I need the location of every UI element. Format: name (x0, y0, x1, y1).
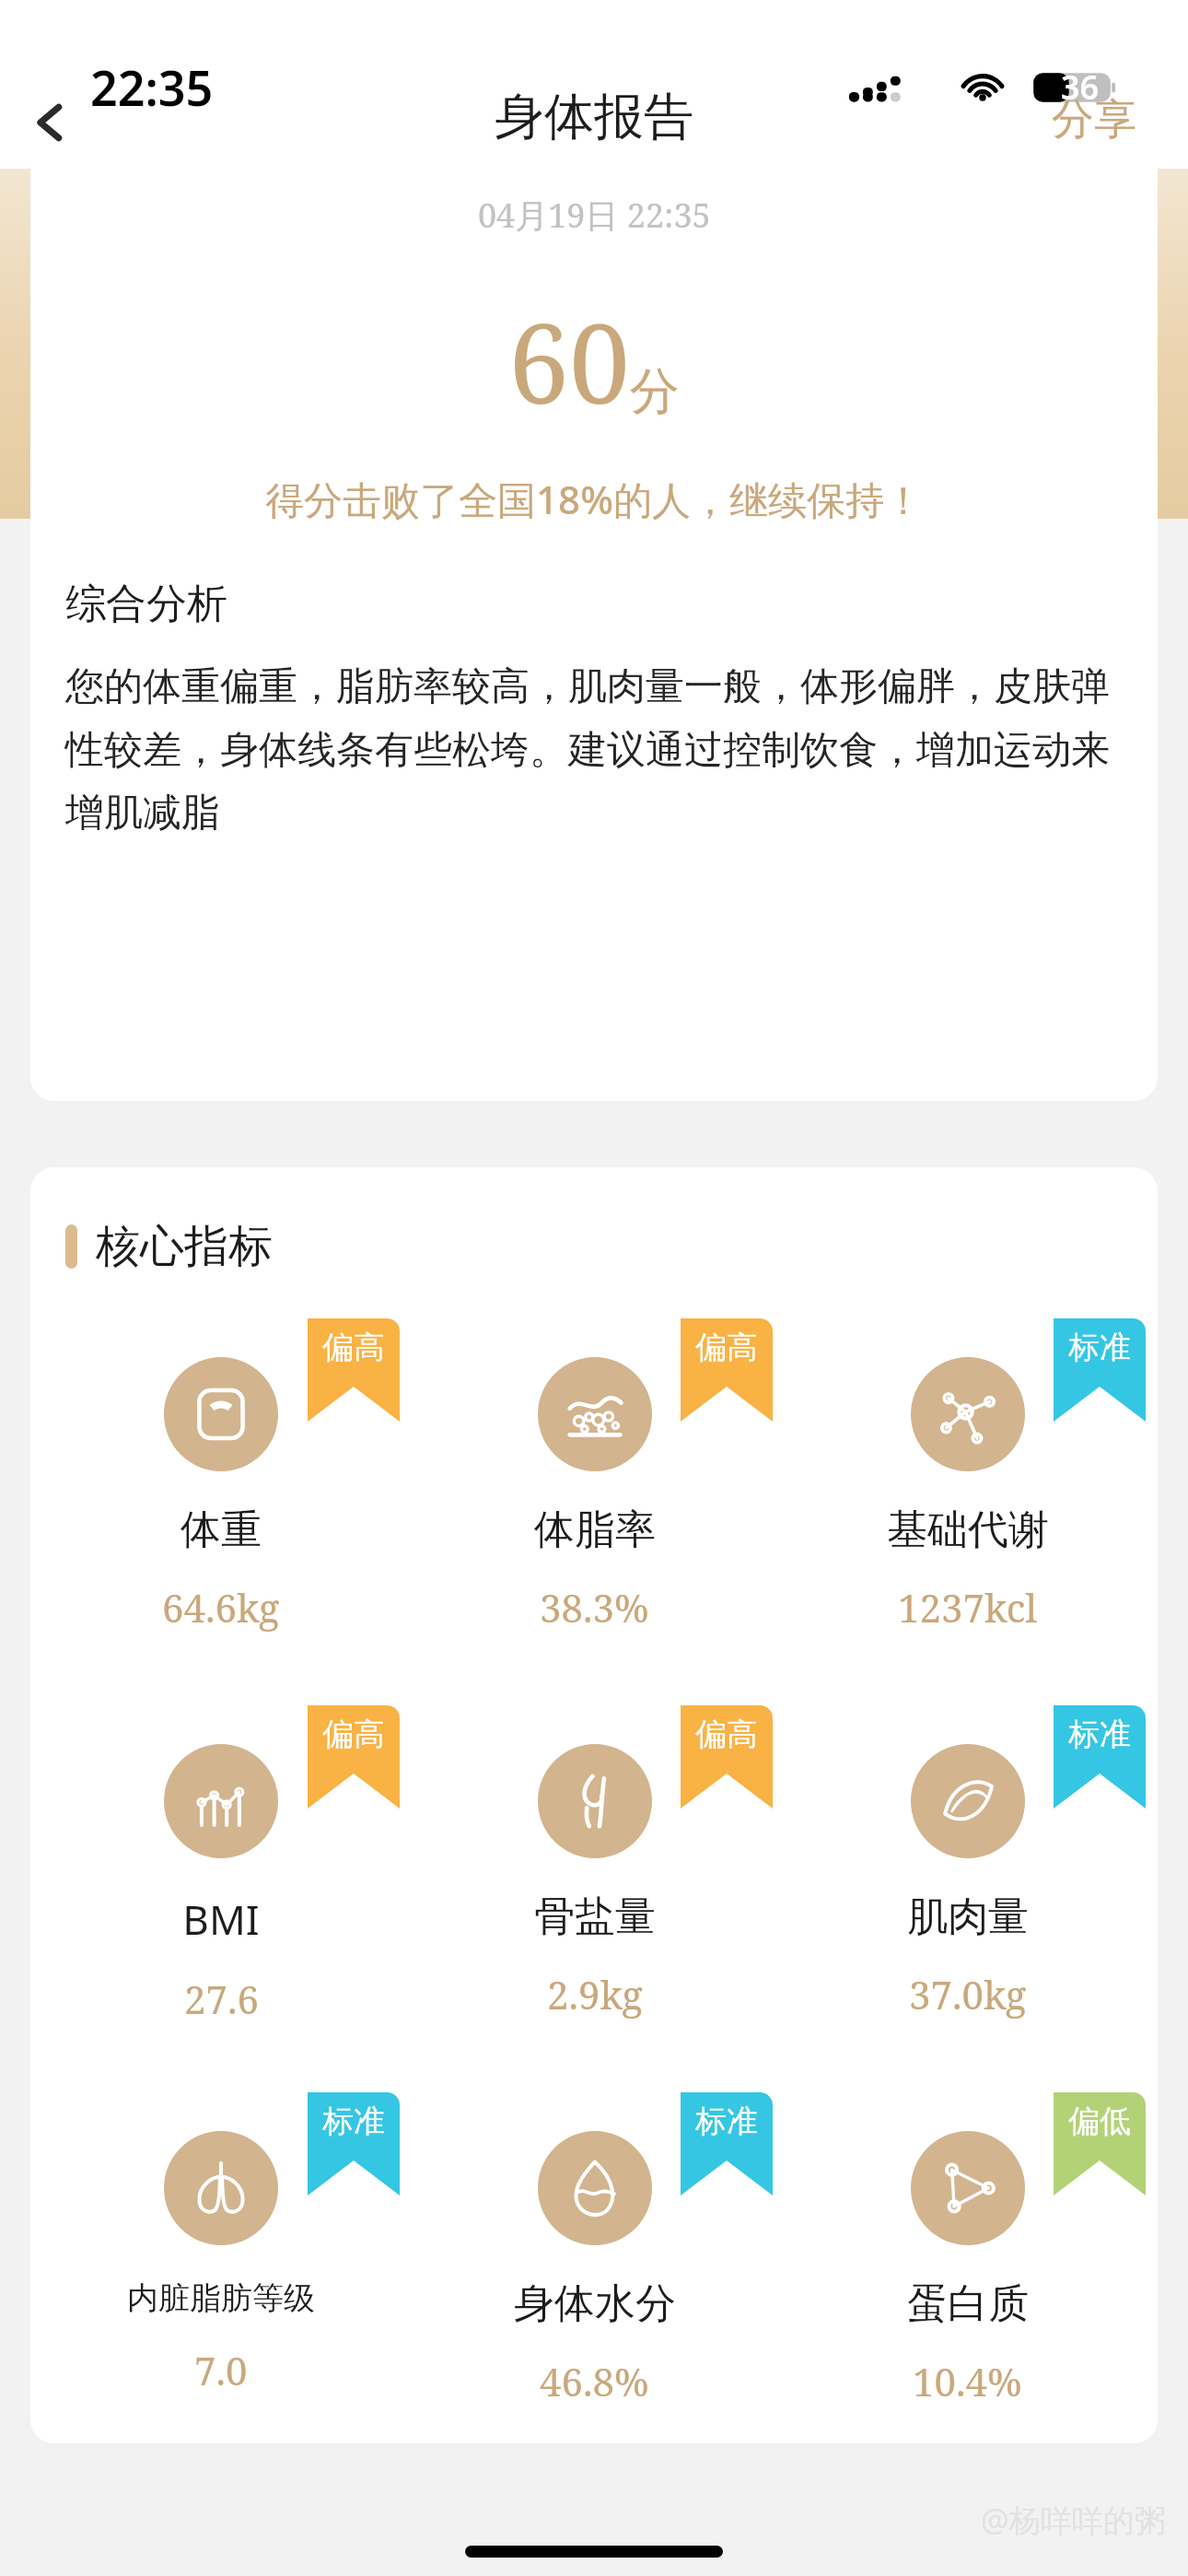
staticText: 得分击败了全国18%的人，继续保持！ (265, 473, 923, 525)
staticText: 64.6kg (162, 1581, 280, 1633)
staticText: 标准 (322, 2102, 385, 2141)
button[interactable]: 内脏脂肪等级 (42, 2092, 400, 2439)
staticText: 38.3% (540, 1581, 649, 1633)
button[interactable]: 基础代谢 (789, 1318, 1146, 1665)
staticText: 偏高 (322, 1328, 385, 1367)
button[interactable]: 蛋白质 (789, 2092, 1146, 2439)
staticText: 偏高 (695, 1328, 758, 1367)
staticText: 标准 (695, 2102, 758, 2141)
staticText: 蛋白质 (907, 2278, 1029, 2329)
button[interactable]: 骨盐量 (416, 1705, 773, 2052)
staticText: @杨咩咩的粥 (981, 2499, 1166, 2541)
button[interactable]: 肌肉量 (789, 1705, 1146, 2052)
staticText: 内脏脂肪等级 (127, 2278, 315, 2318)
staticText: 60 (508, 287, 630, 436)
staticText: 标准 (1068, 1715, 1131, 1754)
staticText: 10.4% (913, 2355, 1022, 2407)
staticText: 身体报告 (495, 86, 693, 148)
staticText: 22:35 (90, 54, 214, 120)
staticText: 核心指标 (96, 1219, 273, 1274)
staticText: 您的体重偏重，脂肪率较高，肌肉量一般，体形偏胖，皮肤弹性较差，身体线条有些松垮。… (65, 662, 1123, 837)
button[interactable]: 身体水分 (416, 2092, 773, 2439)
staticText: BMI (182, 1891, 260, 1947)
staticText: 36 (1061, 64, 1100, 110)
staticText: 04月19日 22:35 (478, 193, 711, 238)
staticText: 体脂率 (534, 1505, 656, 1555)
button[interactable]: BMI (42, 1705, 400, 2052)
staticText: 46.8% (540, 2355, 649, 2407)
staticText: 基础代谢 (887, 1505, 1049, 1555)
staticText: 肌肉量 (907, 1891, 1029, 1942)
staticText: 骨盐量 (534, 1891, 656, 1942)
staticText: 27.6 (184, 1973, 259, 2025)
button[interactable]: 分享 (1039, 84, 1149, 156)
staticText: 分享 (1052, 93, 1136, 146)
staticText: 7.0 (194, 2344, 248, 2396)
staticText: 偏高 (695, 1715, 758, 1754)
staticText: 标准 (1068, 1328, 1131, 1367)
staticText: 37.0kg (909, 1968, 1027, 2020)
button[interactable]: 体脂率 (416, 1318, 773, 1665)
button[interactable]: 体重 (42, 1318, 400, 1665)
staticText: 1237kcl (898, 1581, 1038, 1633)
button[interactable]: Back (0, 76, 101, 169)
staticText: 身体水分 (514, 2278, 676, 2329)
staticText: 2.9kg (547, 1968, 643, 2020)
staticText: 偏高 (322, 1715, 385, 1754)
staticText: 偏低 (1068, 2102, 1131, 2141)
staticText: 分 (630, 360, 680, 423)
staticText: 体重 (181, 1505, 262, 1555)
staticText: 综合分析 (65, 579, 227, 629)
